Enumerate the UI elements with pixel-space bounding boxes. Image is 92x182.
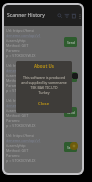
button[interactable]: Send bbox=[64, 142, 77, 152]
staticText: Method: GET bbox=[6, 78, 29, 83]
staticText: Send bbox=[67, 145, 75, 150]
staticText: Url: https://hmsi bbox=[6, 28, 35, 33]
button[interactable]: Url: https://hmsi bbox=[4, 61, 82, 96]
staticText: p = 5T0K0C5W-IX bbox=[6, 158, 36, 163]
staticText: About Us bbox=[34, 63, 54, 69]
staticText: Send bbox=[67, 75, 75, 80]
button[interactable]: Delete bbox=[70, 9, 77, 23]
staticText: This software is produced and supplied b… bbox=[19, 75, 69, 95]
staticText: p = 5T0K0C5W-IX bbox=[6, 53, 36, 58]
staticText: p = 5T0K0C5W-IX bbox=[6, 88, 36, 93]
staticText: /userslyhtp bbox=[6, 108, 26, 113]
button[interactable]: Url: https://hmsi bbox=[4, 96, 82, 131]
button[interactable]: Send bbox=[64, 72, 77, 82]
staticText: Params: bbox=[6, 48, 21, 53]
button[interactable]: Url: https://hmsi bbox=[4, 131, 82, 166]
button[interactable]: Send bbox=[64, 37, 77, 47]
staticText: deneme.com/api/v1 bbox=[6, 138, 41, 143]
staticText: Scanner History bbox=[7, 12, 45, 19]
staticText: p = 5T0K0C5W-IX bbox=[6, 123, 36, 128]
staticText: deneme.com/api/v1 bbox=[6, 103, 41, 108]
staticText: Url: https://hmsi bbox=[6, 133, 35, 138]
button[interactable]: Add bbox=[70, 142, 78, 150]
button[interactable]: More options bbox=[77, 9, 82, 23]
staticText: Url: https://hmsi bbox=[6, 63, 35, 68]
staticText: /userslyhtp bbox=[6, 38, 26, 43]
button[interactable]: Search bbox=[56, 9, 63, 23]
button[interactable]: Send bbox=[64, 107, 77, 117]
staticText: /userslyhtp bbox=[6, 73, 26, 78]
button[interactable]: Url: https://hmsi bbox=[4, 26, 82, 61]
staticText: /userslyhtp bbox=[6, 143, 26, 148]
staticText: Method: GET bbox=[6, 43, 29, 48]
staticText: Params: bbox=[6, 118, 21, 123]
staticText: Params: bbox=[6, 153, 21, 158]
staticText: deneme.com/api/v1 bbox=[6, 68, 41, 73]
button[interactable]: Filter bbox=[63, 9, 70, 23]
staticText: Method: GET bbox=[6, 113, 29, 118]
staticText: Close bbox=[38, 101, 50, 107]
staticText: Send bbox=[67, 110, 75, 115]
button[interactable]: Close bbox=[36, 100, 52, 108]
staticText: Method: GET bbox=[6, 148, 29, 153]
staticText: Params: bbox=[6, 83, 21, 88]
staticText: Send bbox=[67, 40, 75, 45]
staticText: deneme.com/api/v1 bbox=[6, 33, 41, 38]
staticText: Url: https://hmsi bbox=[6, 98, 35, 103]
